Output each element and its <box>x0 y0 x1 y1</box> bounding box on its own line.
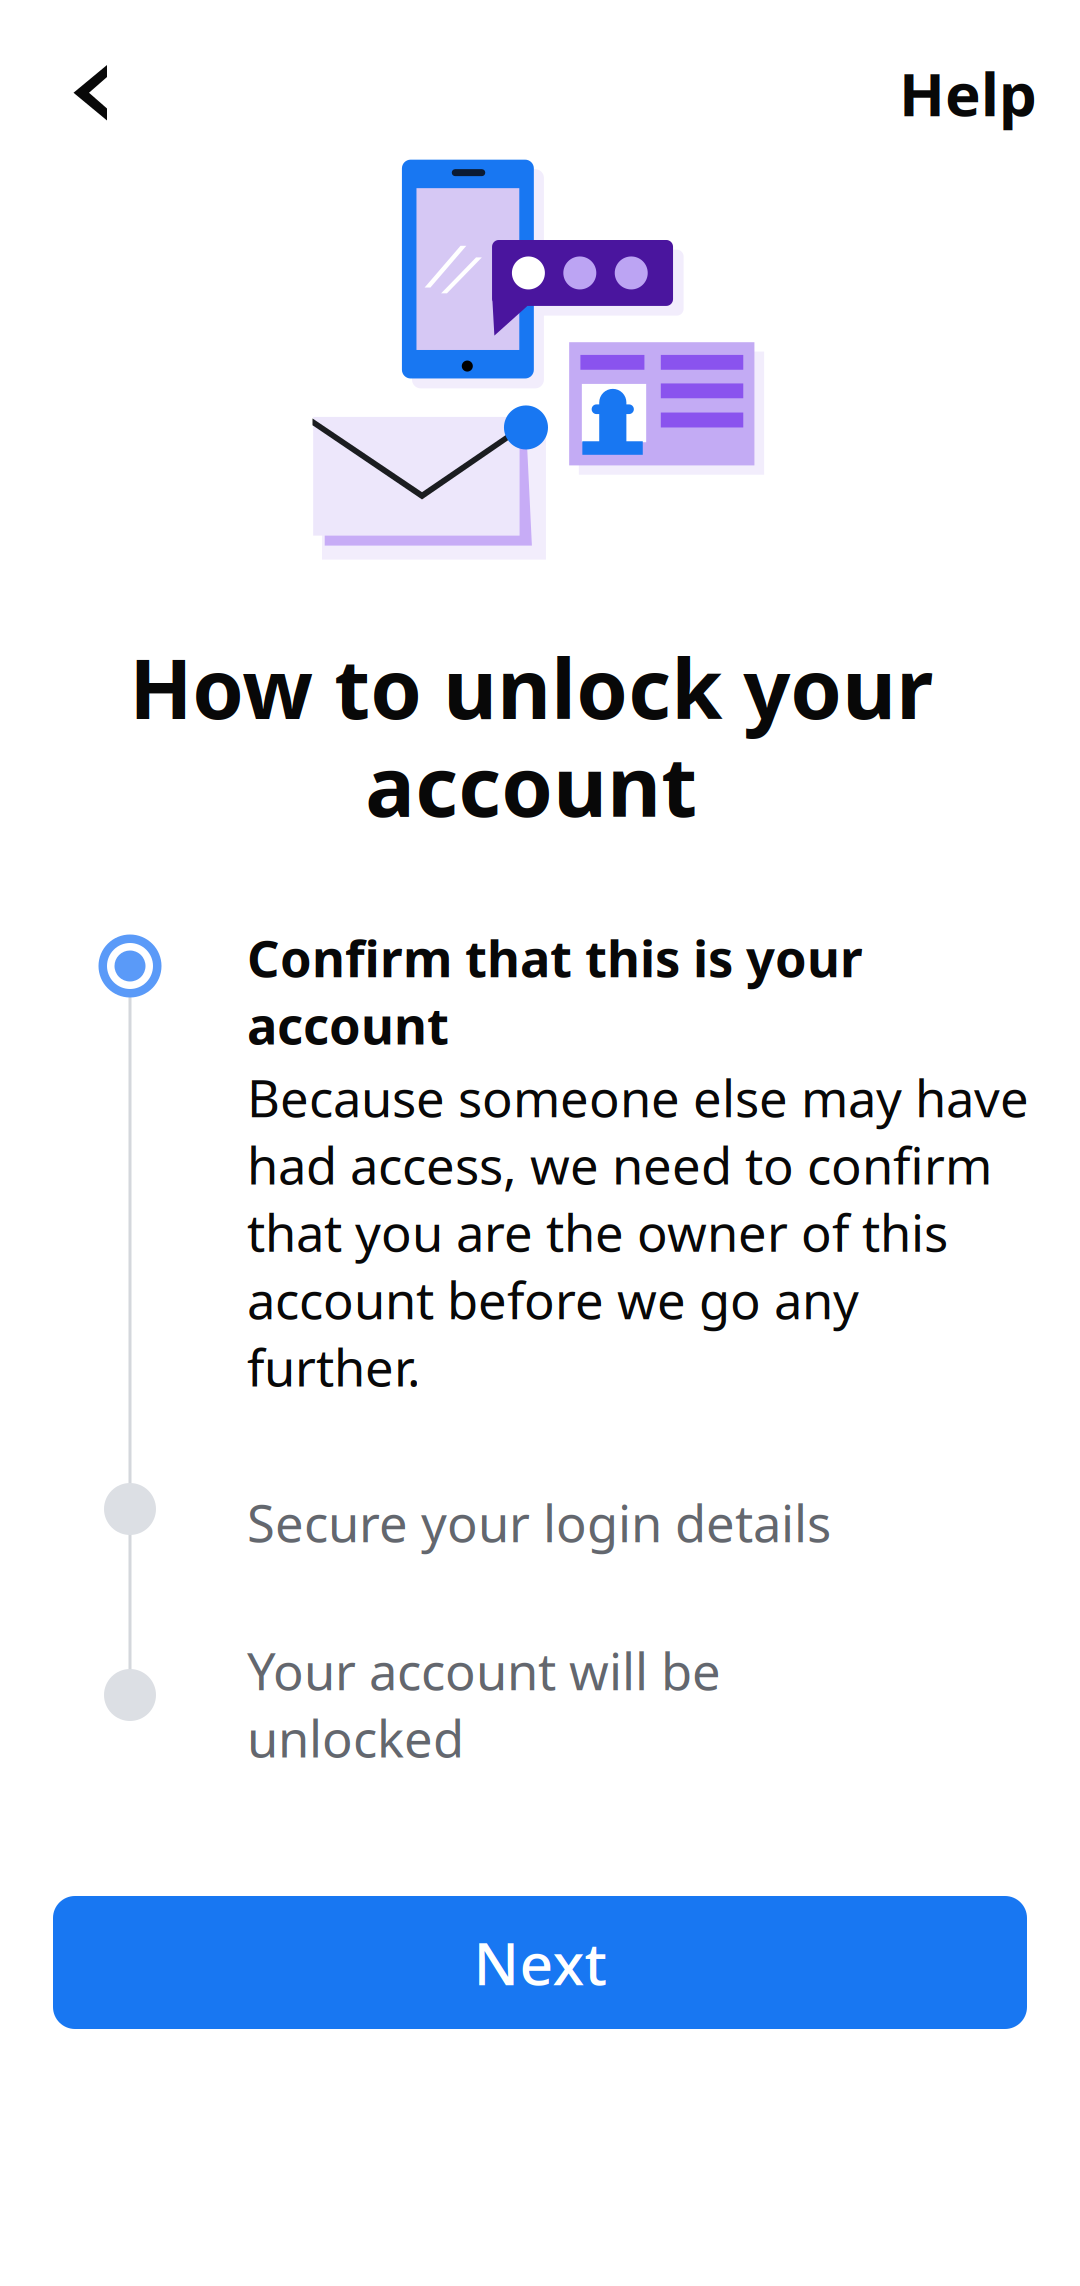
staticText: Secure your login details <box>247 1489 831 1556</box>
button[interactable]: Next <box>53 1896 1027 2029</box>
staticText: Next <box>473 1923 606 2001</box>
button[interactable]: Help <box>862 38 1037 148</box>
staticText: Because someone else may have had access… <box>247 1064 1029 1400</box>
button[interactable]: Back <box>40 38 150 148</box>
staticText: Help <box>899 53 1037 133</box>
staticText: How to unlock your account <box>129 632 933 840</box>
staticText: Your account will be unlocked <box>247 1637 721 1772</box>
staticText: Confirm that this is your account <box>247 924 863 1059</box>
